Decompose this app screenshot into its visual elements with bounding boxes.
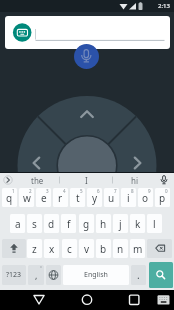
button[interactable]	[77, 290, 97, 310]
button[interactable]: g	[79, 214, 94, 233]
staticText: l	[153, 217, 156, 231]
staticText: x	[49, 242, 55, 256]
staticText: k	[135, 217, 141, 231]
button[interactable]: c	[62, 239, 77, 258]
button[interactable]	[155, 290, 174, 310]
staticText: 8	[131, 188, 134, 194]
staticText: 2	[29, 188, 32, 194]
staticText: 9	[148, 188, 151, 194]
button[interactable]	[67, 98, 107, 134]
button[interactable]: b	[96, 239, 111, 258]
button[interactable]: k	[130, 214, 145, 233]
button[interactable]	[22, 145, 58, 173]
button[interactable]: t	[70, 188, 85, 207]
button[interactable]: o	[138, 188, 153, 207]
staticText: I	[85, 175, 88, 186]
staticText: f	[67, 217, 71, 231]
button[interactable]	[149, 262, 173, 288]
button[interactable]: w	[19, 188, 34, 207]
staticText: ,	[35, 269, 38, 281]
button[interactable]: a	[10, 214, 25, 233]
staticText: 1	[12, 188, 15, 194]
staticText: o	[142, 191, 149, 205]
staticText: a	[15, 217, 21, 231]
button[interactable]: p	[155, 188, 170, 207]
staticText: n	[117, 242, 124, 256]
button[interactable]: I	[60, 173, 112, 187]
button[interactable]: y	[87, 188, 102, 207]
button[interactable]: d	[44, 214, 59, 233]
button[interactable]	[147, 239, 172, 258]
button[interactable]: the	[15, 173, 59, 187]
button[interactable]: v	[79, 239, 94, 258]
staticText: 3	[46, 188, 49, 194]
staticText: y	[92, 191, 98, 205]
staticText: c	[67, 242, 72, 256]
staticText: 7	[114, 188, 117, 194]
staticText: g	[83, 217, 90, 231]
staticText: j	[119, 217, 122, 231]
button[interactable]: h	[96, 214, 111, 233]
staticText: u	[108, 191, 115, 205]
staticText: b	[100, 242, 107, 256]
staticText: English	[84, 270, 108, 280]
staticText: v	[84, 242, 90, 256]
button[interactable]	[2, 239, 26, 258]
button[interactable]: s	[27, 214, 42, 233]
button[interactable]	[116, 145, 152, 173]
staticText: h	[100, 217, 107, 231]
button[interactable]: English	[63, 265, 129, 285]
button[interactable]: x	[44, 239, 59, 258]
button[interactable]	[124, 290, 144, 310]
staticText: 4	[63, 188, 66, 194]
button[interactable]: hi	[113, 173, 157, 187]
staticText: .	[137, 268, 140, 282]
staticText: q	[6, 191, 13, 205]
staticText: 0	[165, 188, 168, 194]
button[interactable]: u	[104, 188, 119, 207]
staticText: p	[159, 191, 166, 205]
staticText: the	[31, 175, 44, 186]
button[interactable]	[74, 44, 99, 69]
button[interactable]: n	[113, 239, 128, 258]
button[interactable]: .	[131, 265, 146, 285]
staticText: z	[32, 242, 37, 256]
button[interactable]: i	[121, 188, 136, 207]
button[interactable]: e	[36, 188, 51, 207]
button[interactable]: f	[61, 214, 76, 233]
staticText: d	[48, 217, 55, 231]
button[interactable]: r	[53, 188, 68, 207]
button[interactable]: l	[147, 214, 162, 233]
staticText: m	[133, 242, 143, 256]
staticText: 6	[97, 188, 100, 194]
button[interactable]	[5, 16, 170, 49]
staticText: w	[23, 191, 31, 205]
button[interactable]: m	[130, 239, 145, 258]
button[interactable]: ,	[28, 265, 44, 285]
button[interactable]: z	[27, 239, 42, 258]
staticText: °	[40, 265, 42, 271]
button[interactable]	[58, 137, 115, 173]
button[interactable]	[46, 265, 61, 285]
staticText: i	[127, 191, 130, 205]
staticText: 5	[80, 188, 83, 194]
staticText: t	[76, 191, 80, 205]
button[interactable]: ?123	[2, 265, 26, 285]
staticText: 2:13	[158, 2, 170, 10]
staticText: ?123	[6, 270, 22, 280]
staticText: s	[32, 217, 37, 231]
button[interactable]: j	[113, 214, 128, 233]
staticText: hi	[131, 175, 139, 186]
staticText: e	[41, 191, 47, 205]
button[interactable]	[29, 290, 49, 310]
staticText: r	[58, 191, 63, 205]
button[interactable]: q	[2, 188, 17, 207]
